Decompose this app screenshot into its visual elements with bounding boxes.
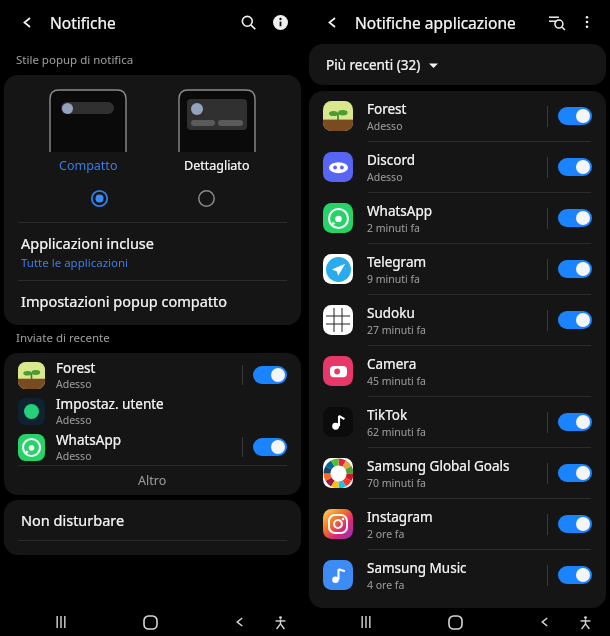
staticText: 9 minuti fa — [367, 272, 420, 286]
staticText: TikTok — [367, 406, 408, 424]
button[interactable]: Compatto — [44, 88, 132, 176]
button[interactable]: On — [558, 464, 592, 482]
staticText: Stile popup di notifica — [16, 52, 134, 68]
button[interactable]: Dettagliato — [173, 88, 261, 176]
staticText: 4 ore fa — [367, 578, 405, 592]
staticText: 45 minuti fa — [367, 374, 426, 388]
button[interactable]: On — [558, 566, 592, 584]
button[interactable]: Instagram — [309, 499, 606, 549]
staticText: 27 minuti fa — [367, 323, 426, 337]
staticText: Adesso — [56, 413, 92, 427]
button[interactable]: Back — [532, 609, 558, 635]
staticText: Forest — [56, 359, 96, 377]
staticText: Telegram — [367, 253, 427, 271]
staticText: Più recenti (32) — [326, 56, 421, 74]
button[interactable]: WhatsApp — [4, 429, 301, 465]
staticText: Notifiche applicazione — [355, 12, 516, 33]
staticText: Forest — [367, 100, 407, 118]
staticText: Adesso — [367, 119, 403, 133]
button[interactable]: Recents — [353, 609, 379, 635]
staticText: WhatsApp — [56, 431, 122, 449]
button[interactable]: Samsung Global Goals — [309, 448, 606, 498]
button[interactable]: On — [253, 438, 287, 456]
button[interactable]: Sudoku — [309, 295, 606, 345]
button[interactable]: Telegram — [309, 244, 606, 294]
staticText: Non disturbare — [21, 510, 125, 530]
button[interactable]: Forest — [4, 357, 301, 393]
staticText: Dettagliato — [184, 157, 250, 174]
button[interactable]: Recents — [48, 609, 74, 635]
button[interactable]: Home — [137, 609, 163, 635]
button[interactable]: Discord — [309, 142, 606, 192]
button[interactable]: On — [558, 413, 592, 431]
staticText: 2 minuti fa — [367, 221, 420, 235]
button[interactable]: Back — [14, 9, 40, 35]
button[interactable]: Altro — [4, 466, 301, 495]
button[interactable]: Info — [267, 9, 293, 35]
staticText: Sudoku — [367, 304, 415, 322]
button[interactable]: Camera — [309, 346, 606, 396]
button[interactable]: On — [253, 366, 287, 384]
staticText: Compatto — [59, 157, 118, 174]
staticText: Samsung Music — [367, 559, 467, 577]
button[interactable]: Back — [227, 609, 253, 635]
button[interactable]: Sort and search — [544, 9, 570, 35]
staticText: 2 ore fa — [367, 527, 405, 541]
staticText: Altro — [138, 472, 167, 489]
button[interactable]: On — [558, 107, 592, 125]
button[interactable]: Non disturbare — [4, 500, 301, 540]
button[interactable]: Impostaz. utente — [4, 393, 301, 429]
button[interactable]: Accessibility — [572, 609, 598, 635]
staticText: Adesso — [367, 170, 403, 184]
button[interactable]: Accessibility — [267, 609, 293, 635]
staticText: Samsung Global Goals — [367, 457, 510, 475]
button[interactable]: Back — [319, 9, 345, 35]
staticText: Adesso — [56, 449, 92, 463]
button[interactable]: Impostazioni popup compatto — [4, 281, 301, 321]
button[interactable]: TikTok — [309, 397, 606, 447]
button[interactable]: On — [558, 209, 592, 227]
button[interactable]: Più recenti (32) — [309, 44, 606, 85]
staticText: 62 minuti fa — [367, 425, 426, 439]
button[interactable]: Search — [235, 9, 261, 35]
button[interactable]: Not selected — [193, 185, 219, 211]
button[interactable]: On — [558, 260, 592, 278]
button[interactable]: Home — [442, 609, 468, 635]
button[interactable]: Forest — [309, 91, 606, 141]
staticText: Impostaz. utente — [56, 395, 164, 413]
staticText: Adesso — [56, 377, 92, 391]
staticText: Instagram — [367, 508, 433, 526]
staticText: Inviate di recente — [16, 330, 110, 346]
button[interactable]: Selected — [86, 185, 112, 211]
button[interactable]: On — [558, 158, 592, 176]
staticText: Camera — [367, 355, 417, 373]
button[interactable]: Samsung Music — [309, 550, 606, 600]
button[interactable]: WhatsApp — [309, 193, 606, 243]
button[interactable]: On — [558, 515, 592, 533]
button[interactable]: Applicazioni incluse — [4, 223, 301, 280]
staticText: 70 minuti fa — [367, 476, 426, 490]
staticText: WhatsApp — [367, 202, 433, 220]
button[interactable]: More options — [574, 9, 600, 35]
button[interactable]: On — [558, 311, 592, 329]
staticText: Tutte le applicazioni — [21, 255, 129, 271]
staticText: Impostazioni popup compatto — [21, 291, 228, 311]
staticText: Applicazioni incluse — [21, 233, 154, 253]
staticText: Notifiche — [50, 12, 116, 33]
staticText: Discord — [367, 151, 416, 169]
